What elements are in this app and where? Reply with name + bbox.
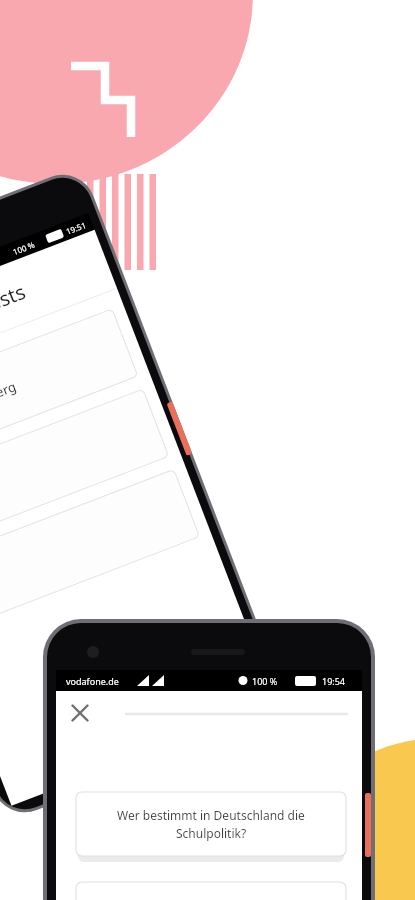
button[interactable]: Einbürgerungstests app store preview <box>0 0 415 900</box>
